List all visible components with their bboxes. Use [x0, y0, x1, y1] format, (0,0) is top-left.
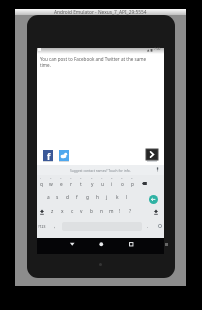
staticText: r — [70, 181, 72, 188]
staticText: 4 — [70, 176, 72, 179]
staticText: 7 — [101, 176, 103, 179]
button[interactable] — [39, 209, 45, 215]
button[interactable] — [153, 209, 159, 215]
staticText: 5 — [80, 176, 82, 179]
staticText: 6 — [91, 176, 93, 179]
staticText: f — [76, 194, 78, 201]
staticText: ? — [129, 208, 132, 215]
staticText: ! — [119, 208, 121, 215]
staticText: z — [51, 208, 54, 215]
button[interactable]: t — [76, 180, 86, 189]
button[interactable]: j — [102, 193, 112, 202]
button[interactable]: x — [57, 207, 67, 216]
button[interactable] — [98, 241, 105, 248]
staticText: u — [101, 181, 104, 188]
staticText: f — [47, 151, 51, 162]
button[interactable]: z — [47, 207, 57, 216]
staticText: l — [126, 194, 128, 201]
staticText: 9 — [121, 176, 123, 179]
button[interactable]: . — [143, 221, 153, 230]
staticText: a — [47, 194, 50, 201]
staticText: e — [60, 181, 63, 188]
button[interactable]: w — [46, 180, 56, 189]
staticText: d — [66, 194, 69, 201]
staticText: 1 — [40, 176, 42, 179]
button[interactable]: q — [36, 180, 46, 189]
button[interactable]: ? — [125, 207, 135, 216]
staticText: g — [86, 194, 89, 201]
button[interactable] — [141, 181, 148, 186]
staticText: w — [49, 181, 53, 188]
button[interactable]: Suggest contact names? Touch for info. — [37, 165, 164, 175]
staticText: p — [131, 181, 134, 188]
button[interactable]: c — [67, 207, 77, 216]
staticText: s — [56, 194, 59, 201]
staticText: x — [61, 208, 64, 215]
button[interactable]: s — [52, 193, 62, 202]
button[interactable] — [69, 241, 76, 248]
staticText: m — [109, 208, 114, 215]
staticText: 7:00 — [154, 47, 161, 51]
staticText: n — [100, 208, 103, 215]
button[interactable]: n — [96, 207, 106, 216]
staticText: i — [111, 181, 113, 188]
staticText: y — [91, 181, 94, 188]
button[interactable]: m — [106, 207, 116, 216]
button[interactable]: b — [86, 207, 96, 216]
staticText: c — [71, 208, 74, 215]
staticText: 8 — [111, 176, 113, 179]
button[interactable]: k — [112, 193, 122, 202]
staticText: v — [80, 208, 83, 215]
button[interactable]: h — [92, 193, 102, 202]
staticText: q — [40, 181, 43, 188]
button[interactable] — [59, 150, 69, 161]
button[interactable] — [128, 241, 135, 248]
staticText: 0 — [131, 176, 133, 179]
staticText: 3 — [60, 176, 62, 179]
staticText: k — [116, 194, 119, 201]
button[interactable]: f — [72, 193, 82, 202]
staticText: You can post to Facebook and Twitter at … — [40, 56, 147, 62]
button[interactable]: p — [127, 180, 137, 189]
staticText: time. — [40, 62, 51, 68]
staticText: ?123 — [38, 224, 46, 229]
button[interactable]: a — [43, 193, 53, 202]
button[interactable]: d — [62, 193, 72, 202]
button[interactable]: y — [87, 180, 97, 189]
button[interactable]: o — [117, 180, 127, 189]
button[interactable]: l — [122, 193, 132, 202]
staticText: Android Emulator - Nexus_7_API_29:5554 — [54, 9, 147, 15]
button[interactable] — [149, 195, 158, 204]
button[interactable]: v — [76, 207, 86, 216]
staticText: j — [106, 194, 108, 201]
button[interactable]: g — [82, 193, 92, 202]
staticText: b — [90, 208, 93, 215]
button[interactable]: f — [43, 150, 53, 161]
staticText: t — [80, 181, 82, 188]
staticText: , — [54, 223, 56, 229]
button[interactable]: ! — [115, 207, 125, 216]
button[interactable]: u — [97, 180, 107, 189]
staticText: o — [121, 181, 124, 188]
button[interactable] — [146, 149, 158, 160]
staticText: . — [147, 223, 149, 229]
button[interactable]: r — [66, 180, 76, 189]
staticText: h — [96, 194, 99, 201]
button[interactable]: i — [107, 180, 117, 189]
button[interactable]: , — [50, 221, 60, 230]
staticText: 2 — [50, 176, 52, 179]
button[interactable]: e — [56, 180, 66, 189]
staticText: Suggest contact names? Touch for info. — [70, 168, 131, 172]
